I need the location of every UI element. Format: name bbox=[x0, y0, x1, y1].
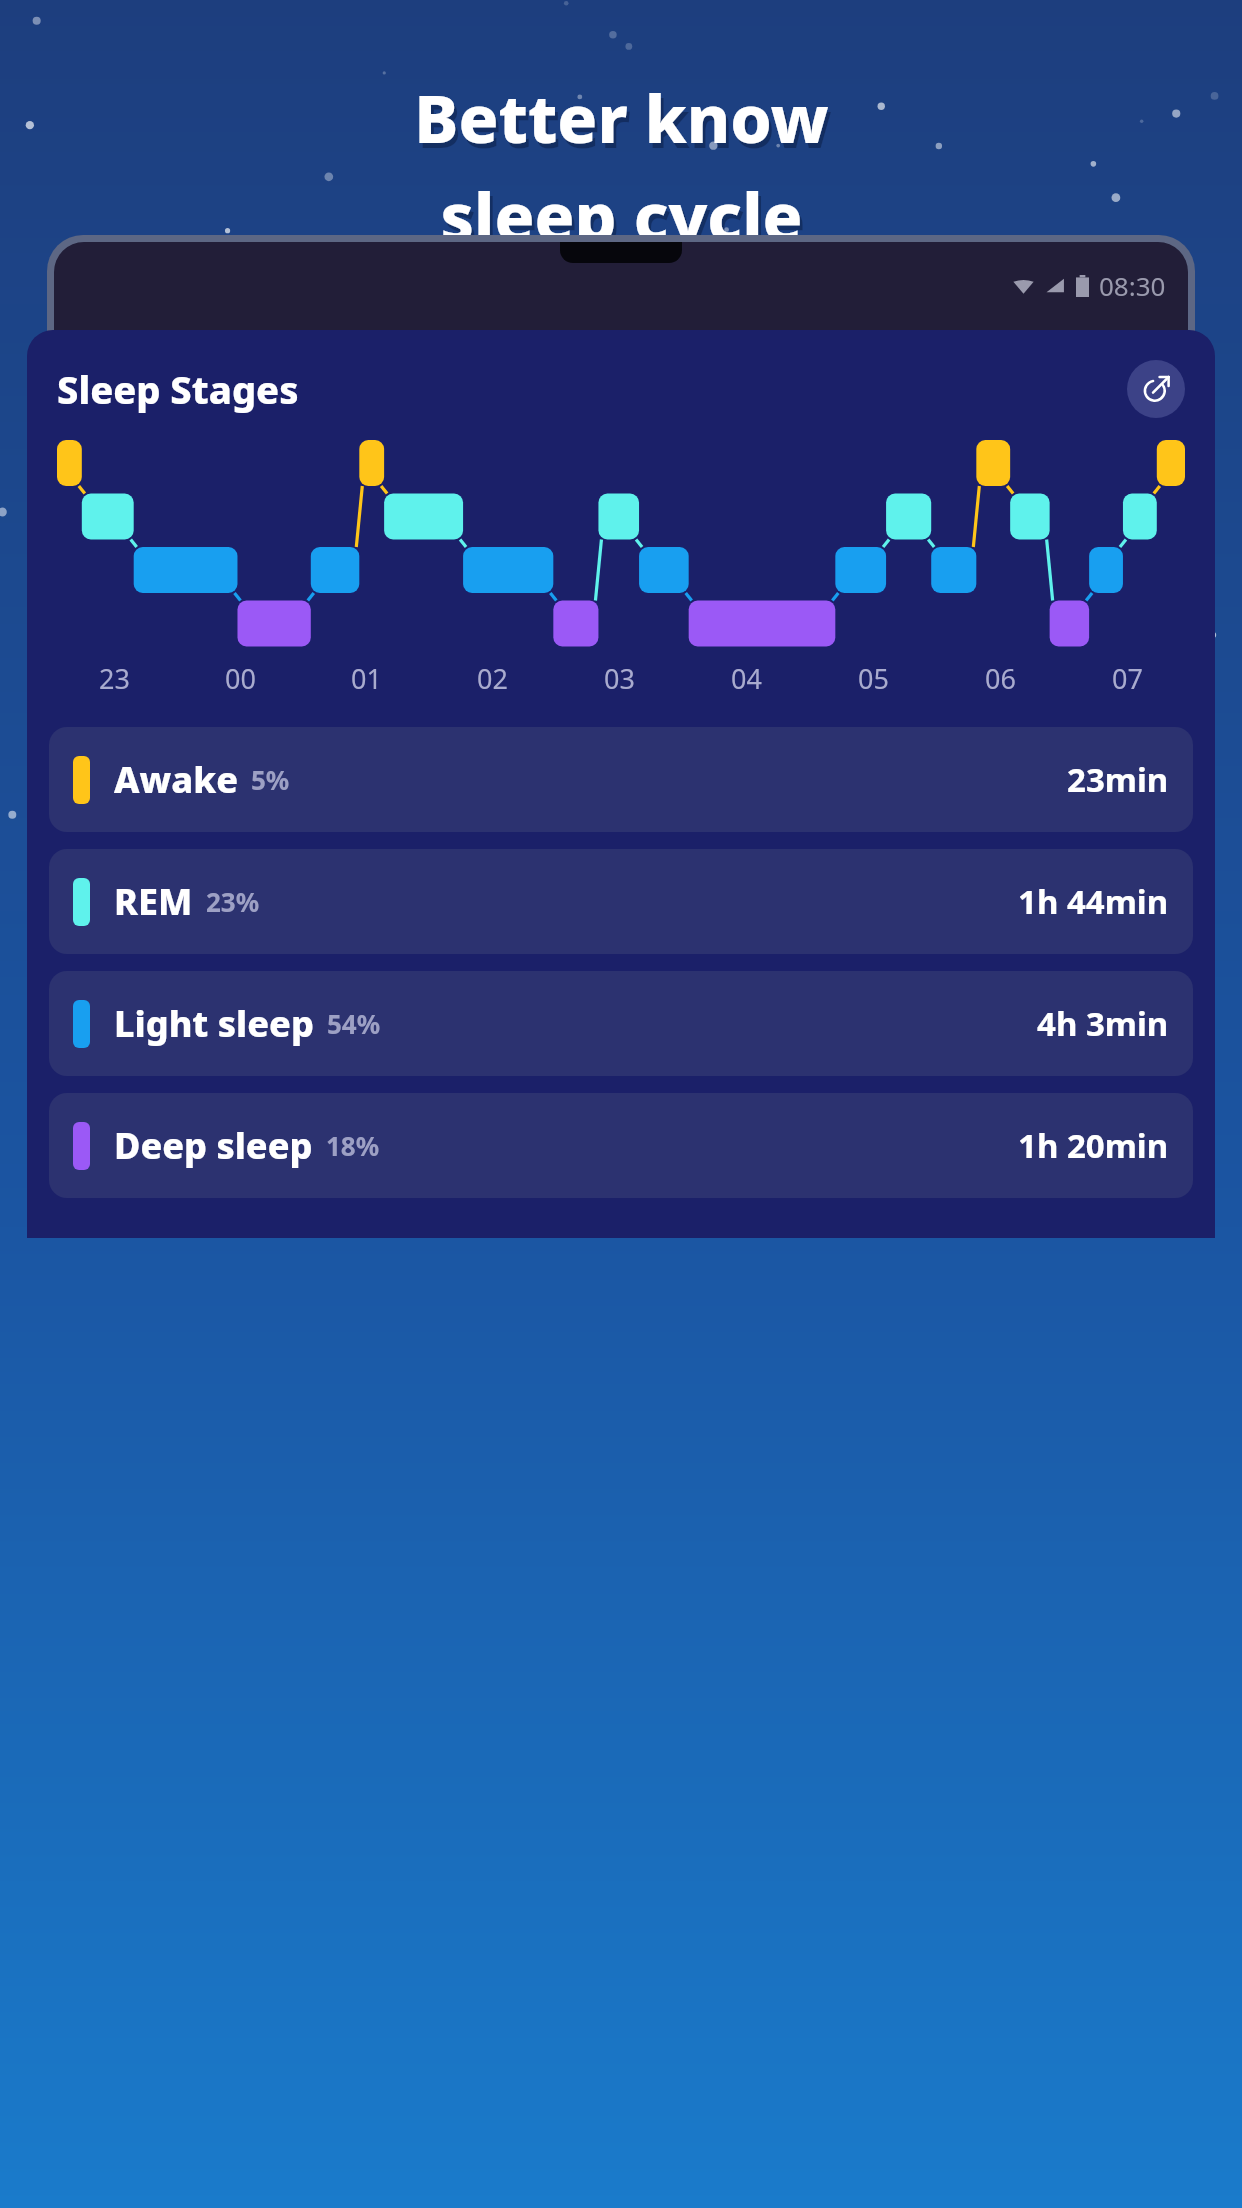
staticText: 1h 44min bbox=[1018, 879, 1169, 924]
button[interactable]: REM bbox=[49, 849, 1193, 954]
staticText: 01 bbox=[351, 660, 382, 697]
button[interactable]: Share bbox=[1127, 360, 1185, 418]
staticText: 06 bbox=[985, 660, 1016, 697]
staticText: Sleep Stages bbox=[57, 363, 299, 415]
button[interactable]: Light sleep bbox=[49, 971, 1193, 1076]
button[interactable]: 21 bbox=[1058, 379, 1136, 457]
staticText: Awake bbox=[114, 755, 238, 804]
staticText: Better know bbox=[414, 72, 829, 162]
staticText: 4h 3min bbox=[1037, 1001, 1169, 1046]
staticText: 15 bbox=[128, 398, 163, 439]
button[interactable]: 15 bbox=[106, 379, 184, 457]
staticText: 08:30 bbox=[1099, 268, 1166, 303]
staticText: sleep cycle bbox=[443, 175, 806, 265]
staticText: Better know bbox=[417, 77, 832, 167]
staticText: 54% bbox=[327, 1006, 381, 1041]
staticText: REM bbox=[114, 877, 193, 926]
button[interactable]: Awake bbox=[49, 727, 1193, 832]
staticText: 23min bbox=[1067, 757, 1169, 802]
staticText: 23 bbox=[99, 660, 130, 697]
button[interactable]: 20 bbox=[899, 379, 977, 457]
button[interactable]: Deep sleep bbox=[49, 1093, 1193, 1198]
staticText: Deep sleep bbox=[114, 1121, 313, 1170]
staticText: 04 bbox=[731, 660, 762, 697]
staticText: Light sleep bbox=[114, 999, 314, 1048]
staticText: 5% bbox=[251, 762, 290, 797]
staticText: 05 bbox=[858, 660, 889, 697]
staticText: 1h 20min bbox=[1018, 1123, 1169, 1168]
staticText: 18% bbox=[326, 1128, 380, 1163]
staticText: 03 bbox=[604, 660, 635, 697]
staticText: 07 bbox=[1112, 660, 1143, 697]
staticText: 16 bbox=[286, 398, 321, 439]
staticText: sleep cycle bbox=[440, 170, 803, 260]
staticText: 02 bbox=[477, 660, 508, 697]
staticText: 23% bbox=[206, 884, 260, 919]
staticText: 00 bbox=[225, 660, 256, 697]
button[interactable]: 16 bbox=[264, 379, 342, 457]
